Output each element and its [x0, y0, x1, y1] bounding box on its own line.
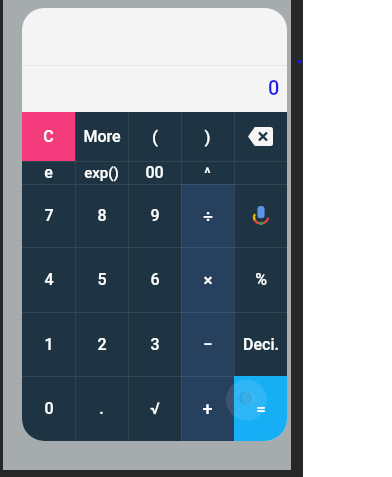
button[interactable]: 1: [22, 312, 75, 376]
staticText: ^: [204, 164, 211, 182]
button[interactable]: exp(): [75, 161, 128, 184]
button[interactable]: 9: [128, 184, 181, 247]
button[interactable]: Deci.: [234, 312, 287, 376]
staticText: 00: [145, 163, 164, 182]
button[interactable]: 3: [128, 312, 181, 376]
staticText: 7: [44, 206, 54, 225]
button[interactable]: %: [234, 247, 287, 312]
button[interactable]: 0: [22, 376, 75, 441]
button[interactable]: 8: [75, 184, 128, 247]
staticText: √: [150, 399, 160, 418]
button[interactable]: Backspace: [234, 112, 287, 161]
staticText: exp(): [84, 164, 119, 182]
staticText: Deci.: [243, 335, 279, 354]
button[interactable]: 00: [128, 161, 181, 184]
button[interactable]: −: [181, 312, 234, 376]
staticText: ×: [203, 270, 213, 290]
button[interactable]: √: [128, 376, 181, 441]
button[interactable]: +: [181, 376, 234, 441]
button[interactable]: [234, 161, 287, 184]
staticText: 5: [97, 270, 107, 289]
staticText: +: [202, 398, 213, 419]
button[interactable]: 2: [75, 312, 128, 376]
button[interactable]: ×: [181, 247, 234, 312]
button[interactable]: 6: [128, 247, 181, 312]
button[interactable]: ÷: [181, 184, 234, 247]
staticText: 1: [44, 335, 54, 354]
staticText: 0: [268, 76, 280, 99]
staticText: 4: [44, 270, 54, 289]
staticText: 0: [44, 399, 54, 418]
staticText: ÷: [203, 206, 213, 226]
staticText: More: [83, 127, 121, 146]
staticText: 2: [97, 335, 107, 354]
staticText: C: [43, 127, 54, 146]
button[interactable]: e: [22, 161, 75, 184]
staticText: %: [255, 270, 267, 289]
staticText: ): [204, 127, 211, 147]
button[interactable]: Voice input: [234, 184, 287, 247]
staticText: 6: [150, 270, 160, 289]
button[interactable]: 7: [22, 184, 75, 247]
button[interactable]: More: [75, 112, 128, 161]
other: Voice input: [253, 206, 269, 225]
staticText: (: [152, 127, 158, 147]
button[interactable]: 5: [75, 247, 128, 312]
other: Backspace: [248, 127, 273, 146]
button[interactable]: C: [22, 112, 75, 161]
staticText: .: [99, 399, 104, 418]
staticText: 8: [97, 206, 107, 225]
staticText: −: [203, 334, 213, 354]
staticText: =: [256, 399, 266, 419]
button[interactable]: (: [128, 112, 181, 161]
button[interactable]: ): [181, 112, 234, 161]
button[interactable]: .: [75, 376, 128, 441]
button[interactable]: Equals: [234, 376, 287, 441]
staticText: 3: [150, 335, 160, 354]
staticText: e: [44, 163, 53, 182]
button[interactable]: 4: [22, 247, 75, 312]
staticText: 9: [150, 206, 160, 225]
button[interactable]: ^: [181, 161, 234, 184]
